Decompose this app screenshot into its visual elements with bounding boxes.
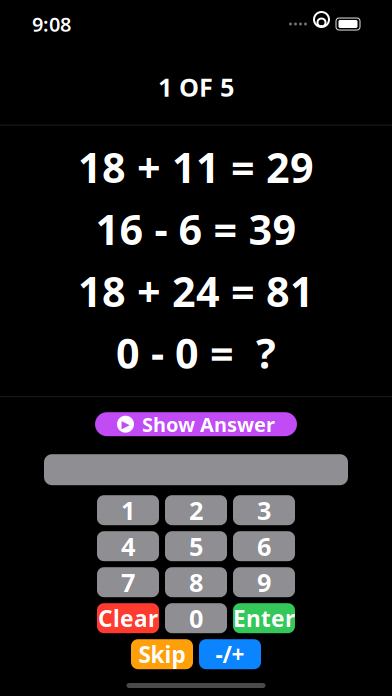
- staticText: 8: [189, 565, 203, 599]
- staticText: 3: [257, 493, 271, 527]
- staticText: 9:08: [32, 11, 71, 37]
- staticText: 0 - 0 = ?: [116, 325, 276, 380]
- staticText: 1 OF 5: [158, 70, 234, 104]
- staticText: ▶: [121, 418, 129, 430]
- staticText: 0: [189, 601, 203, 635]
- staticText: 9: [257, 565, 271, 599]
- staticText: 18 + 11 = 29: [78, 140, 314, 194]
- button[interactable]: 1: [97, 495, 159, 525]
- staticText: 4: [121, 529, 135, 563]
- staticText: 16 - 6 = 39: [95, 201, 296, 256]
- button[interactable]: 3: [233, 495, 295, 525]
- button[interactable]: 5: [165, 531, 227, 561]
- button[interactable]: 8: [165, 567, 227, 597]
- button[interactable]: 7: [97, 567, 159, 597]
- staticText: 6: [257, 529, 271, 563]
- button[interactable]: Clear: [97, 603, 159, 633]
- staticText: 7: [121, 565, 135, 599]
- staticText: Enter: [233, 603, 295, 633]
- staticText: Skip: [138, 639, 185, 669]
- button[interactable]: 6: [233, 531, 295, 561]
- staticText: Show Answer: [142, 411, 275, 437]
- staticText: 2: [189, 493, 203, 527]
- button[interactable]: 9: [233, 567, 295, 597]
- staticText: -/+: [215, 639, 244, 669]
- button[interactable]: 4: [97, 531, 159, 561]
- button[interactable]: 2: [165, 495, 227, 525]
- button[interactable]: -/+: [199, 639, 261, 669]
- button[interactable]: Enter: [233, 603, 295, 633]
- staticText: Clear: [98, 603, 158, 633]
- staticText: 5: [189, 529, 203, 563]
- button[interactable]: 0: [165, 603, 227, 633]
- staticText: 18 + 24 = 81: [78, 263, 314, 318]
- button[interactable]: ▶: [95, 412, 297, 436]
- staticText: 1: [121, 493, 135, 527]
- button[interactable]: Skip: [131, 639, 193, 669]
